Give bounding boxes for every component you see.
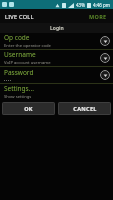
staticText: Login — [50, 25, 64, 32]
staticText: Show settings — [4, 94, 32, 99]
staticText: VoIP account username — [4, 60, 51, 66]
staticText: 43% — [76, 2, 85, 8]
staticText: OK — [24, 105, 33, 112]
staticText: Settings... — [4, 84, 34, 93]
staticText: Username — [4, 50, 36, 59]
staticText: Op code — [4, 33, 30, 42]
button[interactable]: Open Username dropdown — [100, 53, 110, 63]
staticText: Enter the operator code — [4, 43, 51, 49]
button[interactable]: Password — [0, 67, 113, 83]
staticText: MORE — [89, 13, 107, 20]
staticText: LIVE COLL — [5, 13, 34, 20]
button[interactable]: CANCEL — [58, 102, 111, 115]
button[interactable]: Open Op code dropdown — [100, 36, 110, 46]
button[interactable]: MORE — [88, 11, 108, 22]
staticText: CANCEL — [73, 105, 97, 112]
button[interactable]: Op code — [0, 33, 113, 49]
button[interactable]: Username — [0, 50, 113, 66]
button[interactable]: Open Password dropdown — [100, 70, 110, 80]
button[interactable]: Settings... — [0, 84, 113, 99]
staticText: 4:46 pm — [93, 2, 111, 8]
staticText: Password — [4, 68, 34, 77]
button[interactable]: OK — [2, 102, 55, 115]
